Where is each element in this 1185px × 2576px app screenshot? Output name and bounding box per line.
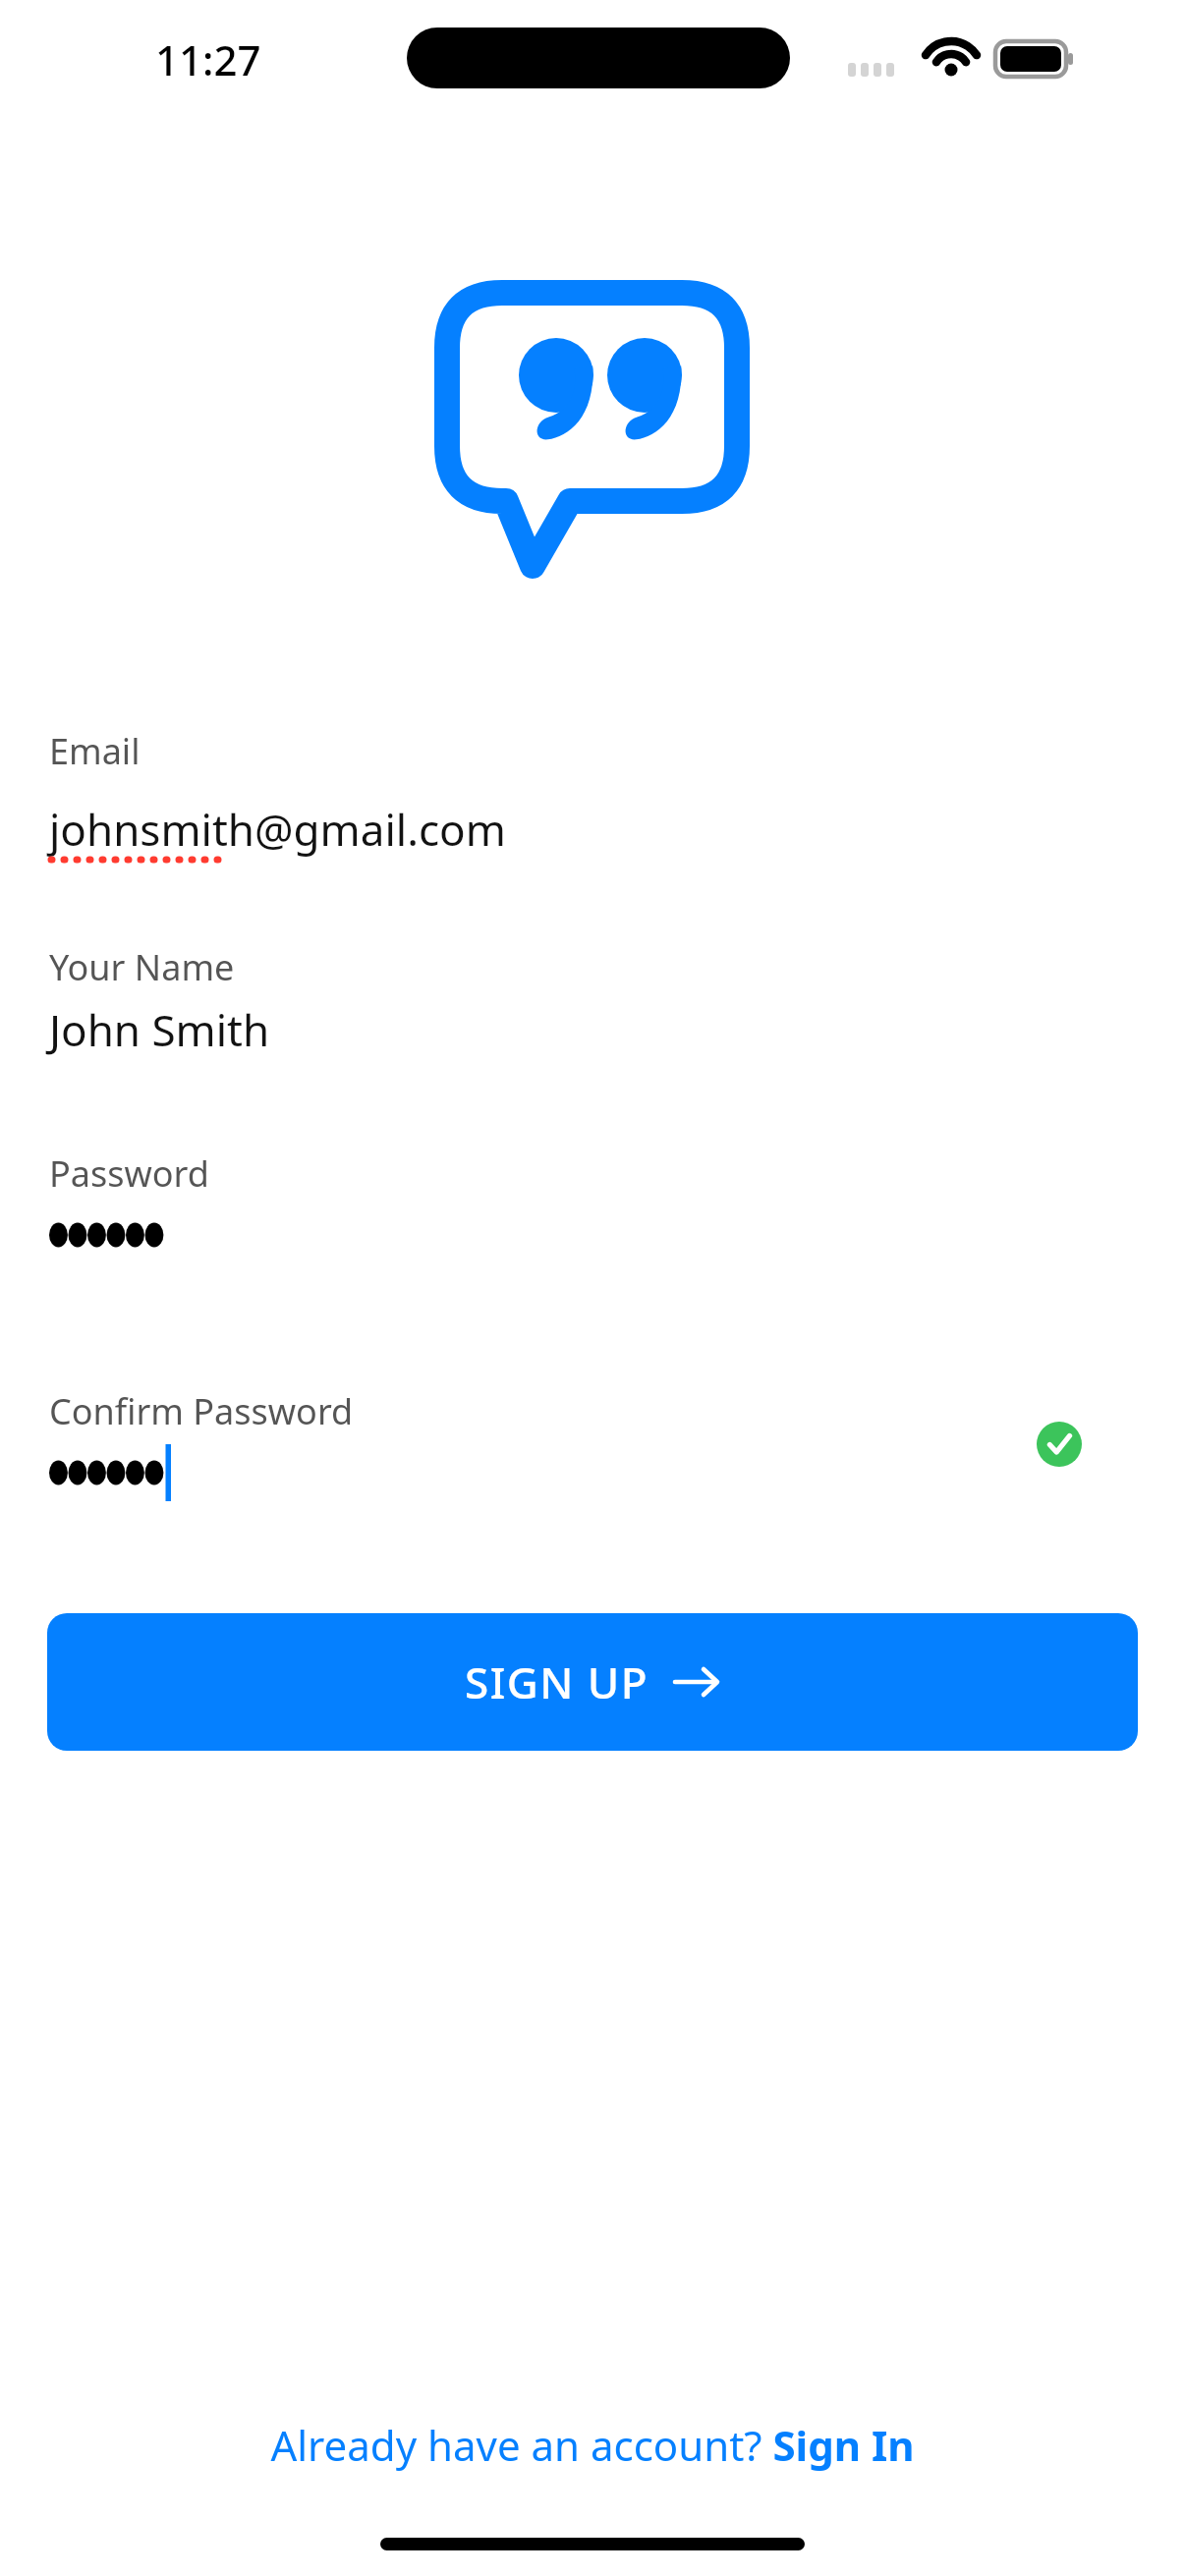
staticText: Already have an account? Sign In (270, 2417, 915, 2473)
button[interactable]: SIGN UP (47, 1613, 1138, 1751)
staticText: johnsmith@gmail.com (49, 800, 506, 859)
staticText: John Smith (49, 1000, 270, 1059)
button[interactable] (0, 1430, 1185, 1515)
button[interactable]: Already have an account? Sign In (0, 2397, 1185, 2492)
staticText: Email (49, 727, 141, 775)
staticText: Your Name (49, 943, 235, 991)
other: Passwords match (1037, 1422, 1082, 1467)
staticText: Confirm Password (49, 1387, 354, 1435)
button[interactable]: johnsmith@gmail.com (0, 786, 1185, 880)
staticText: Password (49, 1149, 209, 1198)
staticText: SIGN UP (465, 1652, 649, 1711)
staticText: 11:27 (155, 31, 261, 87)
button[interactable]: John Smith (0, 986, 1185, 1065)
button[interactable] (0, 1193, 1185, 1277)
